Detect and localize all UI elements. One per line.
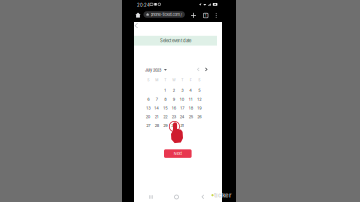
staticText: 24: [180, 114, 185, 119]
staticText: 14: [154, 106, 159, 110]
staticText: 8: [164, 97, 166, 102]
button[interactable]: Back: [133, 22, 141, 30]
staticText: 15: [163, 106, 167, 110]
staticText: Next: [174, 151, 182, 156]
staticText: 20: [146, 114, 151, 119]
staticText: Select event date: [160, 38, 191, 43]
staticText: 13: [146, 106, 150, 110]
staticText: W: [172, 78, 175, 82]
staticText: 22: [163, 114, 167, 119]
button[interactable]: Next month: [203, 66, 209, 72]
button[interactable]: July 2023: [145, 67, 167, 73]
staticText: 11: [189, 97, 193, 102]
button[interactable]: phone-ticket.com/: [143, 11, 185, 18]
staticText: 16: [172, 106, 176, 110]
staticText: 26: [197, 114, 201, 119]
staticText: 30: [171, 123, 176, 128]
staticText: T: [164, 78, 166, 82]
button[interactable]: Next: [164, 149, 192, 158]
staticText: phone-ticket.com/: [150, 12, 181, 17]
staticText: 1: [164, 88, 166, 93]
button[interactable]: New tab: [190, 9, 196, 22]
staticText: 28: [155, 123, 159, 128]
staticText: 4: [189, 88, 192, 93]
staticText: 27: [146, 123, 150, 128]
staticText: 21: [155, 114, 159, 119]
button[interactable]: Previous month: [195, 66, 201, 72]
staticText: 10: [180, 97, 185, 102]
staticText: S: [147, 78, 149, 82]
staticText: 1: [205, 13, 207, 18]
staticText: 20:24: [137, 3, 150, 8]
staticText: 7: [156, 97, 158, 102]
staticText: 2: [173, 88, 175, 93]
staticText: S: [198, 78, 200, 82]
button[interactable]: Tabs: [203, 9, 209, 22]
button[interactable]: Recent apps: [146, 191, 156, 202]
staticText: F: [190, 78, 192, 82]
staticText: T: [181, 78, 183, 82]
staticText: 31: [180, 123, 184, 128]
button[interactable]: More options: [213, 9, 219, 22]
staticText: 23: [172, 114, 176, 119]
button[interactable]: Back: [197, 191, 207, 202]
staticText: 19: [197, 106, 201, 110]
staticText: 5: [198, 88, 200, 93]
staticText: 9: [173, 97, 175, 102]
staticText: M: [155, 78, 158, 82]
staticText: 12: [197, 97, 201, 102]
button[interactable]: Home: [171, 191, 181, 202]
staticText: 18: [189, 106, 193, 110]
staticText: 25: [189, 114, 193, 119]
staticText: 3: [181, 88, 183, 93]
staticText: ticker: [214, 192, 231, 199]
staticText: 6: [147, 97, 149, 102]
button[interactable]: Home: [135, 9, 141, 22]
staticText: July 2023: [145, 68, 161, 72]
staticText: 29: [163, 123, 167, 128]
staticText: 17: [180, 106, 184, 110]
